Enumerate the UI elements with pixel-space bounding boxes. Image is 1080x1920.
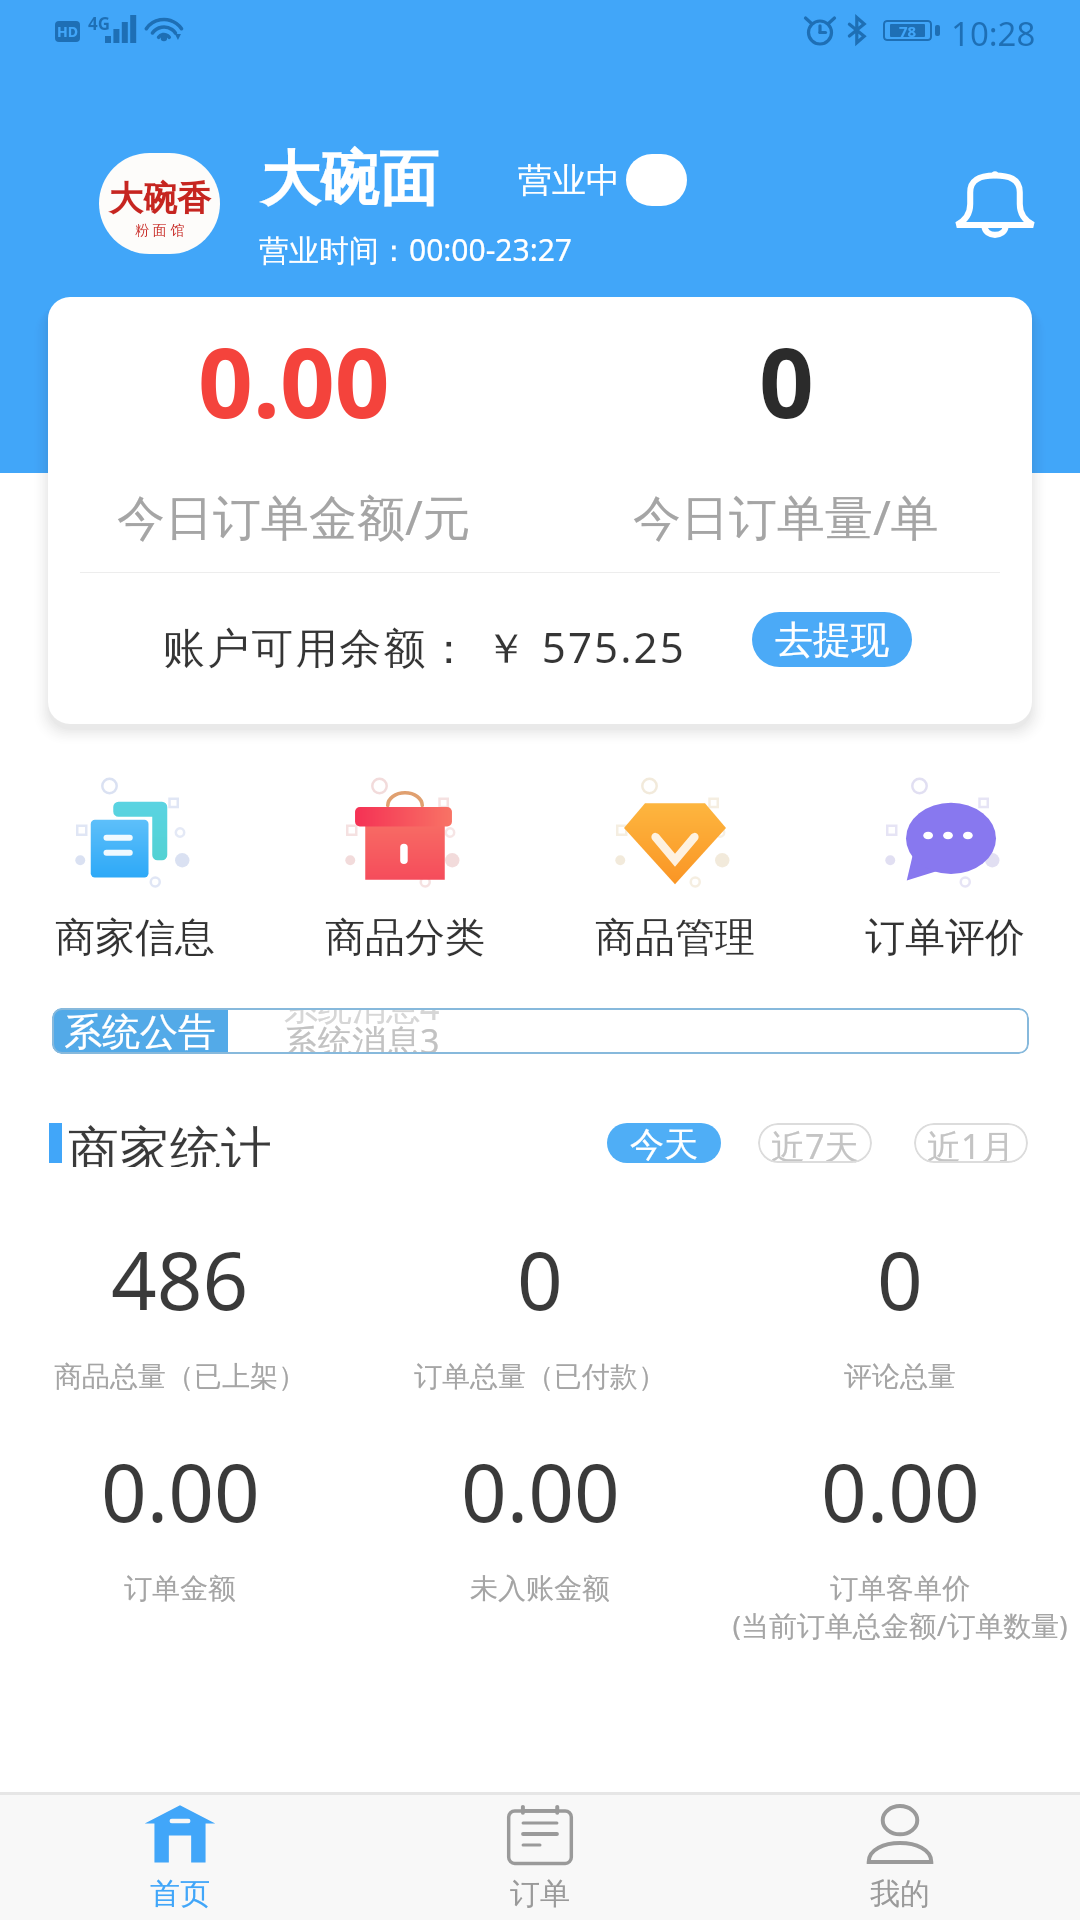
button[interactable]: 系统消息4 [52,1008,1029,1054]
staticText: 商家信息 [55,912,215,962]
staticText: 商品分类 [325,912,485,962]
staticText: 4G [88,12,111,35]
button[interactable]: 商品分类 [270,762,540,962]
button[interactable]: 今天 [607,1123,721,1163]
staticText: 大碗面 [261,142,438,216]
staticText: 营业中 [518,159,620,202]
staticText: 首页 [150,1875,210,1913]
staticText: 0 [517,1224,563,1333]
button[interactable]: 近1月 [914,1123,1028,1163]
staticText: 近1月 [927,1123,1015,1163]
staticText: 0.00 [461,1436,620,1545]
button[interactable]: 营业中 [518,154,687,206]
staticText: 系统消息4 [284,1008,440,1030]
staticText: 订单客单价 [830,1571,970,1606]
staticText: 去提现 [775,616,889,664]
staticText: 订单评价 [865,912,1025,962]
staticText: (当前订单总金额/订单数量) [732,1606,1068,1644]
staticText: HD [57,22,78,41]
staticText: 系统公告 [64,1008,216,1054]
staticText: 评论总量 [844,1359,956,1394]
staticText: 商品管理 [595,912,755,962]
staticText: 账户可用余额： ￥ 575.25 [163,618,686,675]
staticText: 我的 [870,1875,930,1913]
button[interactable]: Notifications [953,166,1037,242]
button[interactable]: 去提现 [752,612,912,667]
button[interactable]: 我的 [720,1795,1080,1920]
staticText: 商家统计 [68,1119,272,1167]
button[interactable]: 订单 [360,1795,720,1920]
staticText: 订单金额 [124,1571,236,1606]
button[interactable]: 订单评价 [810,762,1080,962]
staticText: 486 [111,1224,249,1333]
staticText: 商品总量（已上架） [54,1359,306,1394]
staticText: 0 [877,1224,923,1333]
staticText: 0.00 [821,1436,980,1545]
button[interactable]: 商品管理 [540,762,810,962]
staticText: 0.00 [101,1436,260,1545]
staticText: 订单总量（已付款） [414,1359,666,1394]
button[interactable]: 近7天 [758,1123,872,1163]
staticText: 78 [899,21,917,41]
staticText: 系统消息3 [284,1018,440,1054]
staticText: 订单 [510,1875,570,1913]
staticText: 今天 [630,1123,698,1163]
staticText: 营业时间：00:00-23:27 [259,229,573,270]
staticText: 10:28 [951,11,1036,56]
staticText: 大碗香 [109,177,211,220]
staticText: 0 [759,315,814,446]
staticText: 0.00 [198,315,390,446]
staticText: 今日订单金额/元 [117,484,471,550]
staticText: 今日订单量/单 [633,484,939,550]
button[interactable]: 商家信息 [0,762,270,962]
staticText: 近7天 [771,1123,859,1163]
staticText: 粉 面 馆 [135,220,185,239]
button[interactable]: 首页 [0,1795,360,1920]
staticText: 未入账金额 [470,1571,610,1606]
